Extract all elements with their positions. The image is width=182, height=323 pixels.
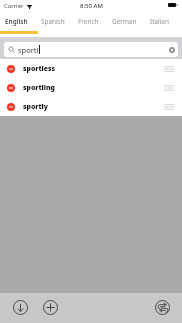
button[interactable]: Add	[41, 298, 60, 317]
button[interactable]: Delete sportless	[0, 59, 182, 78]
other: Reorder sportless	[164, 66, 174, 72]
button[interactable]: Spanish	[38, 14, 68, 29]
button[interactable]: French	[75, 14, 102, 29]
staticText: French	[78, 17, 99, 26]
staticText: sportl	[18, 45, 39, 55]
button[interactable]: Refresh	[153, 298, 172, 317]
staticText: sportly	[23, 102, 48, 111]
button[interactable]: sportl	[4, 42, 178, 57]
button[interactable]: English	[2, 14, 31, 29]
other: Reorder sportling	[164, 85, 174, 91]
staticText: Carrier	[4, 2, 24, 10]
staticText: sportling	[23, 83, 55, 92]
button[interactable]: Download	[11, 298, 30, 317]
button[interactable]: Clear text	[169, 47, 175, 53]
staticText: sportless	[23, 64, 55, 73]
button[interactable]: German	[109, 14, 140, 29]
button[interactable]: Delete sportly	[7, 103, 15, 111]
staticText: Spanish	[41, 17, 65, 26]
button[interactable]: Delete sportling	[0, 78, 182, 97]
button[interactable]: Delete sportling	[7, 84, 15, 92]
staticText: German	[112, 17, 137, 26]
staticText: English	[5, 17, 28, 26]
staticText: Italian	[150, 17, 169, 26]
staticText: 8:50 AM	[80, 2, 103, 10]
button[interactable]: Italian	[147, 14, 172, 29]
button[interactable]: Delete sportless	[7, 65, 15, 73]
other: Reorder sportly	[164, 104, 174, 110]
button[interactable]: Delete sportly	[0, 97, 182, 116]
